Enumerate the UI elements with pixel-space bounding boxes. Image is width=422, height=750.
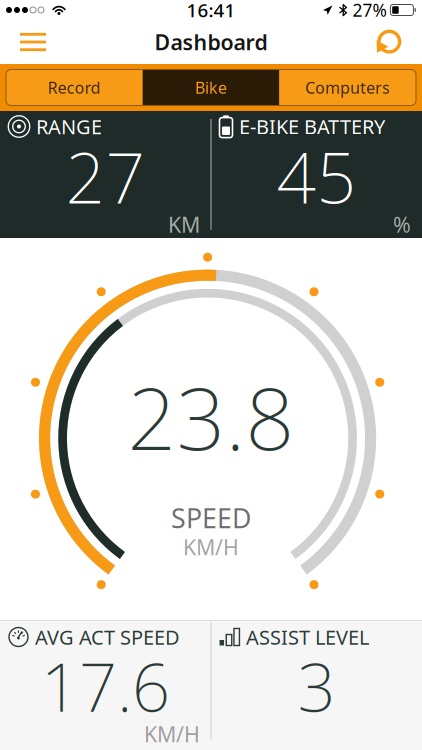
button[interactable]: Refresh — [362, 20, 416, 64]
button[interactable]: Bike — [143, 69, 279, 105]
staticText: 3 — [297, 642, 335, 730]
staticText: KM — [168, 210, 200, 239]
staticText: 27% — [352, 0, 386, 21]
staticText: KM/H — [144, 720, 200, 748]
button[interactable]: Computers — [279, 69, 416, 105]
staticText: SPEED — [171, 500, 251, 536]
staticText: KM/H — [183, 533, 239, 561]
staticText: RANGE — [36, 113, 102, 140]
staticText: ASSIST LEVEL — [246, 624, 369, 650]
staticText: Bike — [195, 77, 227, 98]
staticText: AVG ACT SPEED — [35, 624, 180, 650]
staticText: Record — [48, 77, 101, 98]
staticText: 23.8 — [127, 360, 294, 474]
staticText: 27 — [65, 130, 145, 223]
staticText: E-BIKE BATTERY — [239, 113, 385, 140]
staticText: Dashboard — [154, 28, 267, 56]
staticText: 17.6 — [41, 642, 170, 730]
staticText: Computers — [305, 77, 390, 98]
button[interactable]: Menu — [6, 20, 60, 64]
button[interactable]: Record — [6, 69, 143, 105]
staticText: 16:41 — [186, 0, 235, 22]
staticText: % — [393, 210, 411, 239]
staticText: 45 — [276, 130, 356, 223]
